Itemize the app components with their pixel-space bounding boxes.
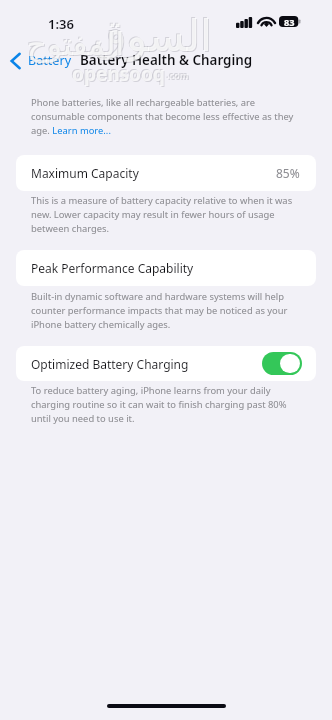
staticText: To reduce battery aging, iPhone learns f… xyxy=(31,384,302,425)
staticText: Battery xyxy=(28,52,72,69)
staticText: Maximum Capacity xyxy=(31,165,139,181)
staticText: .com xyxy=(168,70,190,82)
other: Optimized Battery Charging toggle xyxy=(262,352,302,375)
staticText: السوق xyxy=(94,12,213,62)
staticText: opensooq xyxy=(72,61,165,87)
staticText: السوق xyxy=(92,10,211,60)
staticText: السوق xyxy=(93,11,212,61)
button[interactable]: Peak Performance Capability xyxy=(16,250,316,286)
staticText: opensooq xyxy=(73,62,166,88)
staticText: .com xyxy=(167,69,189,81)
staticText: This is a measure of battery capacity re… xyxy=(31,194,302,235)
staticText: opensooq xyxy=(71,60,164,86)
staticText: Battery Health & Charging xyxy=(80,51,253,69)
staticText: .com xyxy=(166,68,188,80)
staticText: المفتوح xyxy=(26,25,124,61)
staticText: 85% xyxy=(276,165,300,181)
staticText: 83 xyxy=(284,16,295,27)
staticText: المفتوح xyxy=(28,27,126,63)
staticText: Optimized Battery Charging xyxy=(31,356,189,372)
staticText: Phone batteries, like all rechargeable b… xyxy=(31,96,302,137)
staticText: المفتوح xyxy=(27,26,125,62)
staticText: 1:36 xyxy=(48,15,74,33)
button[interactable]: Optimized Battery Charging xyxy=(16,346,316,381)
staticText: Peak Performance Capability xyxy=(31,260,194,276)
staticText: Built-in dynamic software and hardware s… xyxy=(31,290,302,331)
button[interactable]: Battery xyxy=(0,48,80,73)
button[interactable]: Maximum Capacity xyxy=(16,155,316,191)
